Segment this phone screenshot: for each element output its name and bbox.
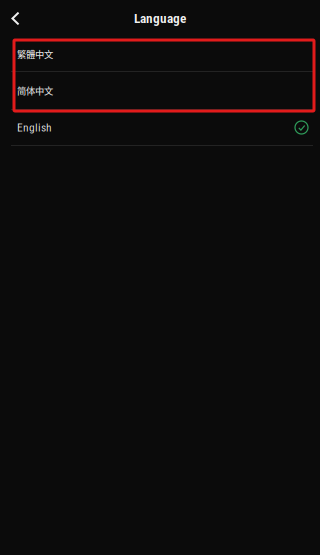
button[interactable]: 繁體中文 <box>0 37 320 71</box>
button[interactable]: English <box>0 110 320 145</box>
staticText: English <box>17 121 52 134</box>
staticText: Language <box>134 11 186 26</box>
button[interactable]: Back <box>0 0 31 37</box>
staticText: 简体中文 <box>17 84 53 97</box>
staticText: 繁體中文 <box>17 47 53 61</box>
button[interactable]: 简体中文 <box>0 72 320 109</box>
